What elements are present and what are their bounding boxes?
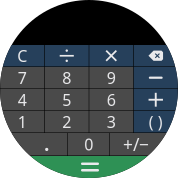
staticText: 2 (62, 111, 71, 132)
button[interactable]: Equals (0, 156, 178, 178)
button[interactable]: Plus or minus (110, 133, 178, 155)
button[interactable]: Multiply (89, 45, 133, 66)
button[interactable]: 8 (45, 67, 89, 88)
staticText: 7 (18, 67, 27, 88)
staticText: C (17, 45, 27, 66)
staticText: 1 (18, 111, 27, 132)
button[interactable]: 1 (0, 111, 44, 132)
button[interactable]: 4 (0, 89, 44, 110)
button[interactable]: Clear (0, 45, 44, 66)
button[interactable]: 6 (89, 89, 133, 110)
staticText: 0 (84, 134, 93, 155)
staticText: 4 (18, 89, 27, 110)
staticText: 6 (107, 89, 116, 110)
button[interactable]: 9 (89, 67, 133, 88)
staticText: 9 (107, 67, 116, 88)
button[interactable]: Plus (134, 89, 178, 110)
button[interactable]: Delete (134, 45, 178, 66)
button[interactable]: 0 (68, 133, 109, 155)
staticText: +/− (123, 133, 149, 156)
staticText: 8 (62, 67, 71, 88)
staticText: 5 (62, 89, 71, 110)
button[interactable]: Parentheses (134, 111, 178, 132)
button[interactable]: Decimal point (0, 133, 67, 155)
button[interactable]: 5 (45, 89, 89, 110)
button[interactable]: Divide (45, 45, 89, 66)
staticText: 3 (107, 111, 116, 132)
button[interactable]: 2 (45, 111, 89, 132)
staticText: ( ) (149, 111, 163, 132)
button[interactable]: 7 (0, 67, 44, 88)
button[interactable]: Minus (134, 67, 178, 88)
button[interactable]: 3 (89, 111, 133, 132)
